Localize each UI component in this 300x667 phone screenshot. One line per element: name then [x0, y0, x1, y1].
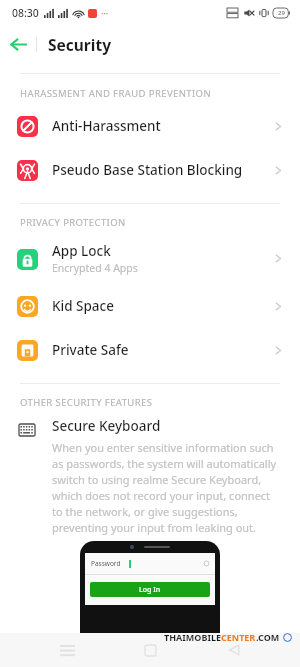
staticText: Encrypted 4 Apps [52, 261, 138, 275]
staticText: Secure Keyboard [52, 417, 161, 435]
staticText: OTHER SECURITY FEATURES [20, 396, 153, 409]
staticText: When you enter sensitive information suc… [52, 440, 282, 535]
staticText: 08:30 [12, 6, 39, 20]
button[interactable]: Anti-Harassment [0, 109, 300, 143]
staticText: Kid Space [52, 297, 114, 315]
staticText: Password [91, 559, 121, 568]
staticText: THAIMOBILE [164, 631, 221, 643]
staticText: CENTER [221, 631, 256, 643]
staticText: Log In [139, 585, 161, 595]
staticText: Anti-Harassment [52, 117, 161, 135]
staticText: .COM [256, 631, 280, 643]
staticText: Pseudo Base Station Blocking [52, 161, 243, 179]
button[interactable]: Pseudo Base Station Blocking [0, 153, 300, 187]
staticText: HARASSMENT AND FRAUD PREVENTION [20, 87, 212, 100]
staticText: App Lock [52, 242, 111, 260]
button[interactable]: App Lock [0, 236, 300, 281]
button[interactable]: Recents [50, 633, 84, 667]
staticText: Private Safe [52, 341, 129, 359]
button[interactable]: Home [133, 633, 167, 667]
staticText: 29 [278, 9, 285, 17]
button[interactable]: Back [217, 633, 251, 667]
button[interactable]: Private Safe [0, 333, 300, 367]
staticText: Security [48, 34, 112, 55]
button[interactable]: Back [0, 26, 36, 62]
button[interactable]: Kid Space [0, 289, 300, 323]
staticText: ··· [101, 7, 109, 19]
staticText: PRIVACY PROTECTION [20, 216, 126, 229]
